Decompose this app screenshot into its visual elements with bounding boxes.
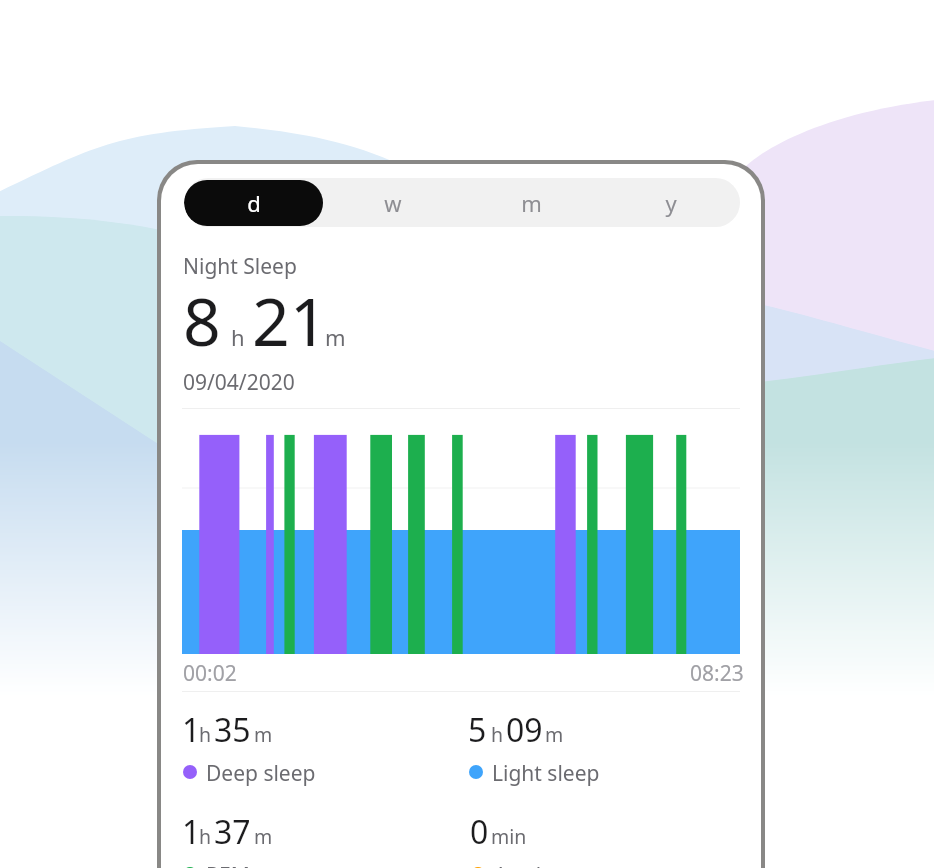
staticText: Awake xyxy=(494,861,559,868)
staticText: 8 xyxy=(183,275,221,365)
staticText: 37 xyxy=(214,810,251,854)
button[interactable]: d xyxy=(184,180,323,226)
button[interactable]: m xyxy=(462,180,601,226)
staticText: h xyxy=(231,322,245,352)
staticText: m xyxy=(254,721,273,748)
staticText: m xyxy=(521,188,542,218)
staticText: 1 xyxy=(182,708,201,752)
staticText: h xyxy=(491,721,504,748)
staticText: m xyxy=(325,322,346,352)
staticText: min xyxy=(491,823,527,850)
button[interactable]: y xyxy=(601,180,740,226)
staticText: 5 xyxy=(468,708,487,752)
staticText: 1 xyxy=(182,810,201,854)
button[interactable]: 5 xyxy=(468,708,758,812)
staticText: 0 xyxy=(470,810,489,854)
staticText: 00:02 xyxy=(183,659,237,688)
staticText: y xyxy=(665,188,677,218)
staticText: Light sleep xyxy=(492,759,600,788)
staticText: 09 xyxy=(506,708,543,752)
button[interactable]: 1 xyxy=(182,810,472,868)
staticText: m xyxy=(254,823,273,850)
staticText: 08:23 xyxy=(690,659,744,688)
staticText: Deep sleep xyxy=(206,759,316,788)
staticText: 21 xyxy=(252,275,328,365)
staticText: m xyxy=(545,721,564,748)
staticText: Night Sleep xyxy=(183,252,297,281)
staticText: d xyxy=(247,188,261,218)
staticText: w xyxy=(384,188,402,218)
staticText: REM xyxy=(206,861,250,868)
staticText: h xyxy=(199,823,212,850)
staticText: 35 xyxy=(214,708,251,752)
staticText: 09/04/2020 xyxy=(183,368,295,397)
staticText: h xyxy=(199,721,212,748)
button[interactable]: 1 xyxy=(182,708,472,812)
button[interactable]: w xyxy=(323,180,462,226)
button[interactable]: 0 xyxy=(470,810,760,868)
